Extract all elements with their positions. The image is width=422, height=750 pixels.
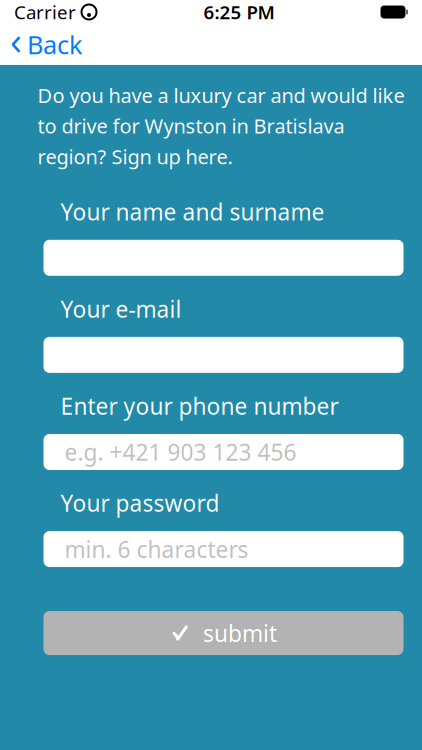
staticText: submit <box>203 618 277 648</box>
staticText: Carrier <box>14 0 76 24</box>
button[interactable]: Back <box>0 24 95 64</box>
button[interactable]: submit <box>43 611 403 655</box>
staticText: min. 6 characters <box>64 534 248 564</box>
staticText: Your name and surname <box>60 197 324 227</box>
staticText: e.g. +421 903 123 456 <box>64 437 296 467</box>
staticText: Do you have a luxury car and would like … <box>37 82 404 170</box>
staticText: Your password <box>60 488 219 518</box>
staticText: Enter your phone number <box>60 391 338 421</box>
staticText: Your e-mail <box>60 294 181 324</box>
staticText: Back <box>27 28 83 61</box>
staticText: 6:25 PM <box>203 0 274 24</box>
